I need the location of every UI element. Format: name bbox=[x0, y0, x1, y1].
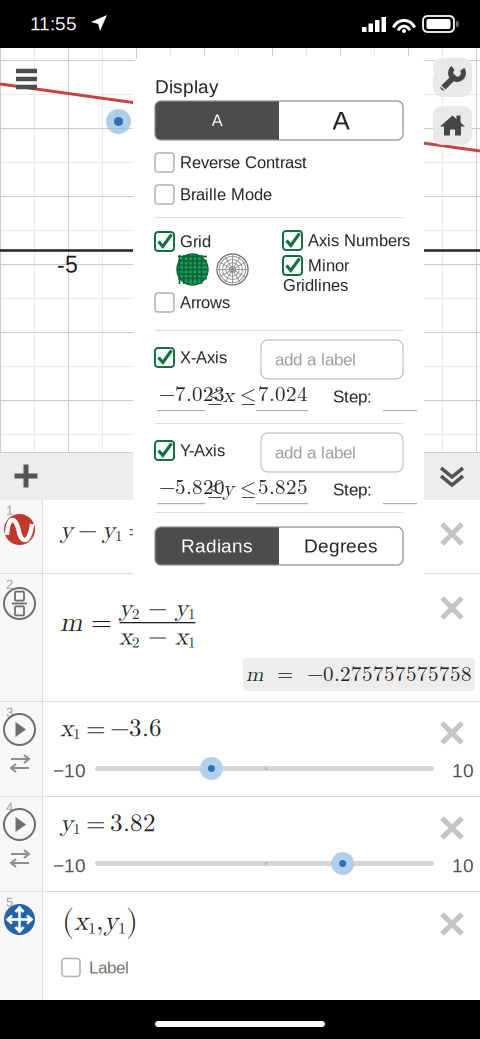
staticText: −3.6 bbox=[110, 716, 162, 741]
button[interactable]: Polar grid bbox=[217, 254, 248, 285]
button[interactable]: A bbox=[155, 101, 279, 140]
button[interactable]: Menu bbox=[16, 68, 37, 90]
staticText: ≤ bbox=[207, 478, 223, 499]
button[interactable]: Graph settings bbox=[433, 58, 472, 97]
staticText: Step: bbox=[333, 480, 372, 499]
staticText: 11:55 bbox=[30, 13, 77, 34]
staticText: − bbox=[196, 518, 225, 543]
button[interactable]: X-Axis bbox=[155, 348, 227, 367]
staticText: m bbox=[246, 664, 263, 685]
staticText: − bbox=[140, 596, 175, 621]
staticText: x bbox=[183, 518, 196, 543]
staticText: x bbox=[225, 518, 238, 543]
button[interactable]: A bbox=[279, 101, 403, 140]
staticText: , bbox=[96, 908, 104, 935]
staticText: A bbox=[211, 111, 222, 130]
staticText: add a label bbox=[275, 443, 356, 462]
button[interactable]: Braille Mode bbox=[155, 185, 272, 204]
staticText: add a label bbox=[275, 350, 356, 369]
button[interactable]: Grid bbox=[155, 232, 211, 251]
staticText: y bbox=[102, 518, 115, 543]
staticText: 10 bbox=[452, 760, 474, 781]
button[interactable]: Axis Numbers bbox=[283, 231, 410, 250]
staticText: x bbox=[175, 624, 188, 649]
button[interactable]: add a label bbox=[261, 340, 403, 379]
staticText: 1 bbox=[115, 529, 123, 544]
button[interactable]: Delete expression bbox=[430, 806, 474, 850]
staticText: ≤ bbox=[240, 385, 256, 406]
staticText: Braille Mode bbox=[180, 185, 272, 204]
staticText: 1 bbox=[73, 727, 81, 742]
staticText: x bbox=[60, 716, 73, 741]
staticText: −7.023 bbox=[159, 384, 225, 405]
staticText: 1 bbox=[73, 822, 81, 837]
staticText: y bbox=[119, 596, 132, 621]
button[interactable]: Delete expression bbox=[430, 512, 474, 556]
staticText: 1 bbox=[118, 920, 126, 936]
staticText: y bbox=[104, 908, 118, 935]
staticText: y bbox=[60, 518, 73, 543]
staticText: 3 bbox=[6, 705, 13, 719]
staticText: 4 bbox=[6, 800, 13, 814]
staticText: Gridlines bbox=[283, 276, 348, 294]
button[interactable]: Draggable point bbox=[4, 904, 35, 935]
staticText: 2 bbox=[132, 635, 140, 650]
staticText: Radians bbox=[181, 535, 253, 557]
button[interactable]: Delete expression bbox=[430, 586, 474, 630]
staticText: 1 bbox=[6, 503, 13, 517]
staticText: Grid bbox=[180, 232, 211, 251]
button[interactable]: Minor bbox=[283, 256, 349, 275]
staticText: A bbox=[332, 106, 349, 135]
button[interactable]: Delete expression bbox=[430, 711, 474, 755]
button[interactable]: Cartesian grid bbox=[177, 254, 208, 285]
staticText: x bbox=[74, 908, 88, 935]
button[interactable]: Reverse Contrast bbox=[155, 153, 307, 172]
button[interactable]: Convert to list bbox=[9, 849, 31, 869]
button[interactable]: Label bbox=[62, 958, 129, 977]
staticText: ≤ bbox=[240, 478, 256, 499]
button[interactable]: add a label bbox=[261, 433, 403, 472]
staticText: ( bbox=[173, 518, 183, 543]
button[interactable]: Arrows bbox=[155, 293, 230, 312]
staticText: ) bbox=[246, 518, 256, 543]
staticText: 2 bbox=[132, 607, 140, 622]
staticText: −10 bbox=[53, 855, 86, 876]
staticText: 1 bbox=[88, 920, 96, 936]
staticText: = bbox=[82, 609, 112, 636]
staticText: ≤ bbox=[207, 385, 223, 406]
button[interactable]: Home bbox=[433, 106, 472, 145]
staticText: = bbox=[81, 716, 110, 741]
button[interactable]: Add expression bbox=[2, 452, 50, 500]
button[interactable]: Collapse expression list bbox=[428, 452, 476, 500]
staticText: Label bbox=[89, 958, 129, 977]
button[interactable]: Expression 2 options bbox=[4, 588, 35, 619]
staticText: Minor bbox=[308, 256, 349, 275]
staticText: = bbox=[81, 811, 110, 836]
staticText: = bbox=[263, 664, 307, 685]
button[interactable]: Convert to list bbox=[9, 754, 31, 774]
staticText: m bbox=[152, 518, 173, 543]
staticText: −0.275757575758 bbox=[307, 664, 472, 685]
staticText: 2 bbox=[6, 577, 13, 591]
staticText: 1 bbox=[238, 529, 246, 544]
staticText: ) bbox=[126, 906, 138, 937]
staticText: 1 bbox=[188, 607, 196, 622]
staticText: -5 bbox=[57, 252, 78, 278]
staticText: 3.82 bbox=[110, 811, 156, 836]
staticText: −10 bbox=[53, 760, 86, 781]
staticText: − bbox=[73, 518, 102, 543]
staticText: 5.825 bbox=[258, 477, 308, 498]
button[interactable]: Delete expression bbox=[430, 902, 474, 946]
staticText: y bbox=[223, 478, 234, 499]
staticText: y bbox=[175, 596, 188, 621]
button[interactable]: Y-Axis bbox=[155, 441, 225, 460]
staticText: Y-Axis bbox=[180, 441, 225, 460]
button[interactable]: Animate slider bbox=[4, 714, 35, 745]
button[interactable]: Radians bbox=[155, 527, 279, 565]
staticText: y bbox=[60, 811, 73, 836]
button[interactable]: Degrees bbox=[279, 527, 403, 565]
button[interactable]: Animate slider bbox=[4, 809, 35, 840]
button[interactable]: Hide graph for expression 1 bbox=[4, 514, 35, 545]
staticText: 7.024 bbox=[258, 384, 308, 405]
staticText: x bbox=[223, 385, 234, 406]
